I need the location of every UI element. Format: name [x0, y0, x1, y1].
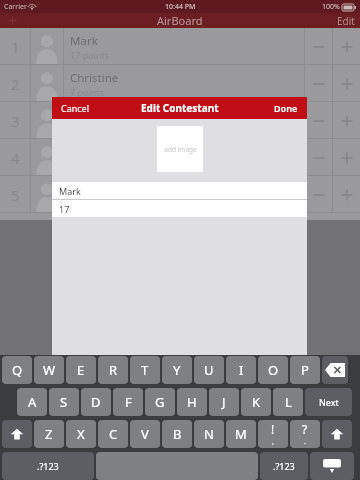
staticText: K: [252, 393, 261, 411]
button[interactable]: V: [130, 420, 160, 448]
staticText: U: [204, 361, 214, 379]
button[interactable]: Increase: [333, 176, 360, 213]
button[interactable]: 1: [0, 28, 360, 65]
staticText: H: [187, 393, 197, 411]
button[interactable]: E: [66, 356, 96, 384]
button[interactable]: .?123: [2, 452, 94, 480]
button[interactable]: D: [81, 388, 111, 416]
staticText: V: [141, 425, 149, 443]
button[interactable]: Shift: [322, 420, 352, 448]
button[interactable]: G: [145, 388, 175, 416]
button[interactable]: .?123: [260, 452, 308, 480]
button[interactable]: Add contestant: [0, 13, 24, 28]
staticText: E: [77, 361, 85, 379]
button[interactable]: Done: [274, 102, 298, 114]
button[interactable]: add image: [157, 126, 203, 172]
staticText: .: [304, 437, 306, 447]
staticText: Edit Contestant: [141, 101, 219, 115]
staticText: 17: [59, 203, 70, 215]
staticText: C: [109, 425, 118, 443]
button[interactable]: Decrease: [305, 65, 332, 102]
button[interactable]: A: [17, 388, 47, 416]
staticText: J: [222, 393, 226, 411]
button[interactable]: W: [34, 356, 64, 384]
button[interactable]: F: [113, 388, 143, 416]
staticText: N: [204, 425, 214, 443]
staticText: T: [141, 361, 149, 379]
button[interactable]: Edit: [337, 14, 355, 28]
button[interactable]: 4: [0, 139, 360, 176]
staticText: add image: [164, 145, 197, 154]
button[interactable]: Increase: [333, 65, 360, 102]
staticText: A: [28, 393, 37, 411]
button[interactable]: Next: [305, 388, 352, 416]
staticText: F: [125, 393, 132, 411]
button[interactable]: Decrease: [305, 102, 332, 139]
button[interactable]: H: [177, 388, 207, 416]
button[interactable]: Increase: [333, 139, 360, 176]
staticText: ,: [272, 437, 274, 447]
staticText: L: [285, 393, 292, 411]
button[interactable]: Mark: [52, 182, 307, 199]
staticText: X: [77, 425, 85, 443]
button[interactable]: Decrease: [305, 176, 332, 213]
button[interactable]: 3: [0, 102, 360, 139]
button[interactable]: K: [241, 388, 271, 416]
button[interactable]: L: [273, 388, 303, 416]
button[interactable]: X: [66, 420, 96, 448]
button[interactable]: O: [258, 356, 288, 384]
button[interactable]: J: [209, 388, 239, 416]
button[interactable]: M: [226, 420, 256, 448]
button[interactable]: N: [194, 420, 224, 448]
staticText: S: [60, 393, 68, 411]
button[interactable]: Z: [34, 420, 64, 448]
staticText: 100%: [322, 2, 340, 12]
staticText: 1: [11, 37, 20, 57]
button[interactable]: Hide keyboard: [310, 452, 354, 480]
button[interactable]: ?: [290, 420, 320, 448]
staticText: ?: [302, 421, 308, 437]
button[interactable]: I: [226, 356, 256, 384]
button[interactable]: P: [290, 356, 320, 384]
staticText: O: [268, 361, 279, 379]
staticText: M: [235, 425, 247, 443]
staticText: 2: [11, 74, 20, 94]
button[interactable]: !: [258, 420, 288, 448]
button[interactable]: Increase: [333, 102, 360, 139]
staticText: Cancel: [61, 102, 90, 114]
staticText: Mark: [59, 185, 81, 197]
staticText: 17 points: [70, 49, 110, 61]
staticText: Y: [173, 361, 181, 379]
staticText: G: [155, 393, 165, 411]
button[interactable]: R: [98, 356, 128, 384]
button[interactable]: Shift: [2, 420, 32, 448]
staticText: Done: [274, 102, 298, 114]
staticText: Christine: [70, 70, 119, 86]
button[interactable]: T: [130, 356, 160, 384]
button[interactable]: Increase: [333, 28, 360, 65]
button[interactable]: Decrease: [305, 139, 332, 176]
button[interactable]: S: [49, 388, 79, 416]
button[interactable]: 17: [52, 200, 307, 217]
staticText: B: [173, 425, 182, 443]
button[interactable]: C: [98, 420, 128, 448]
staticText: 4: [11, 148, 20, 168]
staticText: .?123: [273, 460, 295, 472]
button[interactable]: 5: [0, 176, 360, 213]
button[interactable]: U: [194, 356, 224, 384]
staticText: Edit: [337, 14, 355, 28]
staticText: 3: [11, 111, 20, 131]
button[interactable]: Q: [2, 356, 32, 384]
button[interactable]: 2: [0, 65, 360, 102]
button[interactable]: Backspace: [322, 356, 348, 384]
staticText: Next: [319, 396, 339, 408]
button[interactable]: Cancel: [61, 102, 90, 114]
staticText: R: [109, 361, 118, 379]
button[interactable]: B: [162, 420, 192, 448]
staticText: Z: [45, 425, 53, 443]
button[interactable]: Y: [162, 356, 192, 384]
staticText: Carrier: [4, 2, 27, 12]
